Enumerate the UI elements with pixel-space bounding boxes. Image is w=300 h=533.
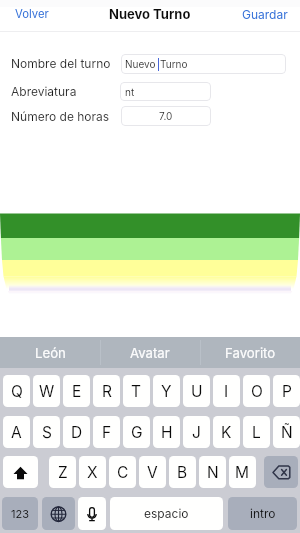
staticText: V [147, 463, 158, 482]
button[interactable]: Nuevo [121, 54, 286, 74]
button[interactable]: Volver [9, 2, 55, 26]
staticText: Abreviatura [11, 84, 77, 99]
staticText: Avatar [130, 345, 170, 361]
button[interactable]: J [183, 416, 210, 448]
button[interactable]: Backspace [264, 456, 298, 488]
button[interactable]: Ñ [273, 416, 300, 448]
staticText: N [207, 463, 219, 482]
staticText: 7.0 [159, 110, 173, 122]
staticText: Nuevo Turno [109, 6, 191, 22]
staticText: Turno [160, 58, 188, 70]
staticText: León [35, 345, 66, 361]
button[interactable]: T [123, 375, 150, 407]
button[interactable]: P [273, 375, 300, 407]
button[interactable]: Z [49, 456, 76, 488]
staticText: Guardar [242, 7, 288, 22]
staticText: X [87, 463, 98, 482]
button[interactable]: G [123, 416, 150, 448]
staticText: S [42, 423, 52, 442]
staticText: F [102, 423, 112, 442]
button[interactable]: H [153, 416, 180, 448]
staticText: Nuevo [125, 58, 159, 70]
button[interactable]: espacio [110, 497, 223, 530]
staticText: Y [161, 382, 172, 401]
button[interactable]: Q [3, 375, 30, 407]
staticText: B [177, 463, 188, 482]
staticText: T [131, 382, 142, 401]
staticText: C [117, 463, 129, 482]
staticText: G [131, 423, 143, 442]
button[interactable]: 123 [2, 497, 38, 530]
button[interactable]: V [139, 456, 166, 488]
staticText: W [39, 382, 55, 401]
button[interactable]: U [183, 375, 210, 407]
button[interactable]: Dictation [78, 497, 106, 530]
button[interactable]: O [243, 375, 270, 407]
staticText: Nombre del turno [11, 56, 111, 71]
staticText: Número de horas [11, 109, 110, 124]
staticText: intro [250, 506, 276, 521]
staticText: Z [58, 463, 68, 482]
staticText: Q [11, 382, 23, 401]
button[interactable]: E [63, 375, 90, 407]
button[interactable]: D [63, 416, 90, 448]
staticText: O [251, 382, 263, 401]
staticText: D [71, 423, 83, 442]
button[interactable]: K [213, 416, 240, 448]
button[interactable]: S [33, 416, 60, 448]
button[interactable]: Guardar [236, 2, 294, 27]
staticText: I [224, 382, 229, 401]
button[interactable]: I [213, 375, 240, 407]
staticText: K [221, 423, 232, 442]
button[interactable]: X [79, 456, 106, 488]
staticText: Favorito [225, 345, 276, 361]
staticText: L [252, 423, 261, 442]
button[interactable]: Favorito [200, 337, 300, 368]
staticText: Volver [15, 7, 49, 21]
staticText: H [161, 423, 173, 442]
button[interactable]: A [3, 416, 30, 448]
button[interactable]: 7.0 [121, 106, 211, 126]
button[interactable]: Avatar [100, 337, 200, 368]
staticText: E [72, 382, 82, 401]
staticText: 123 [11, 507, 29, 520]
button[interactable]: Shift [3, 456, 38, 488]
staticText: espacio [144, 506, 189, 521]
button[interactable]: M [229, 456, 256, 488]
button[interactable]: Y [153, 375, 180, 407]
staticText: nt [125, 86, 135, 98]
button[interactable]: N [199, 456, 226, 488]
button[interactable]: F [93, 416, 120, 448]
staticText: J [192, 423, 201, 442]
staticText: U [191, 382, 203, 401]
button[interactable]: León [0, 337, 100, 368]
button[interactable]: W [33, 375, 60, 407]
button[interactable]: C [109, 456, 136, 488]
button[interactable]: R [93, 375, 120, 407]
staticText: Ñ [281, 423, 293, 442]
staticText: P [282, 382, 292, 401]
button[interactable]: L [243, 416, 270, 448]
staticText: M [235, 463, 250, 482]
staticText: A [11, 423, 22, 442]
staticText: R [102, 382, 112, 401]
button[interactable]: nt [120, 82, 211, 101]
button[interactable]: B [169, 456, 196, 488]
button[interactable]: Change keyboard [42, 497, 75, 530]
button[interactable]: intro [228, 497, 297, 530]
